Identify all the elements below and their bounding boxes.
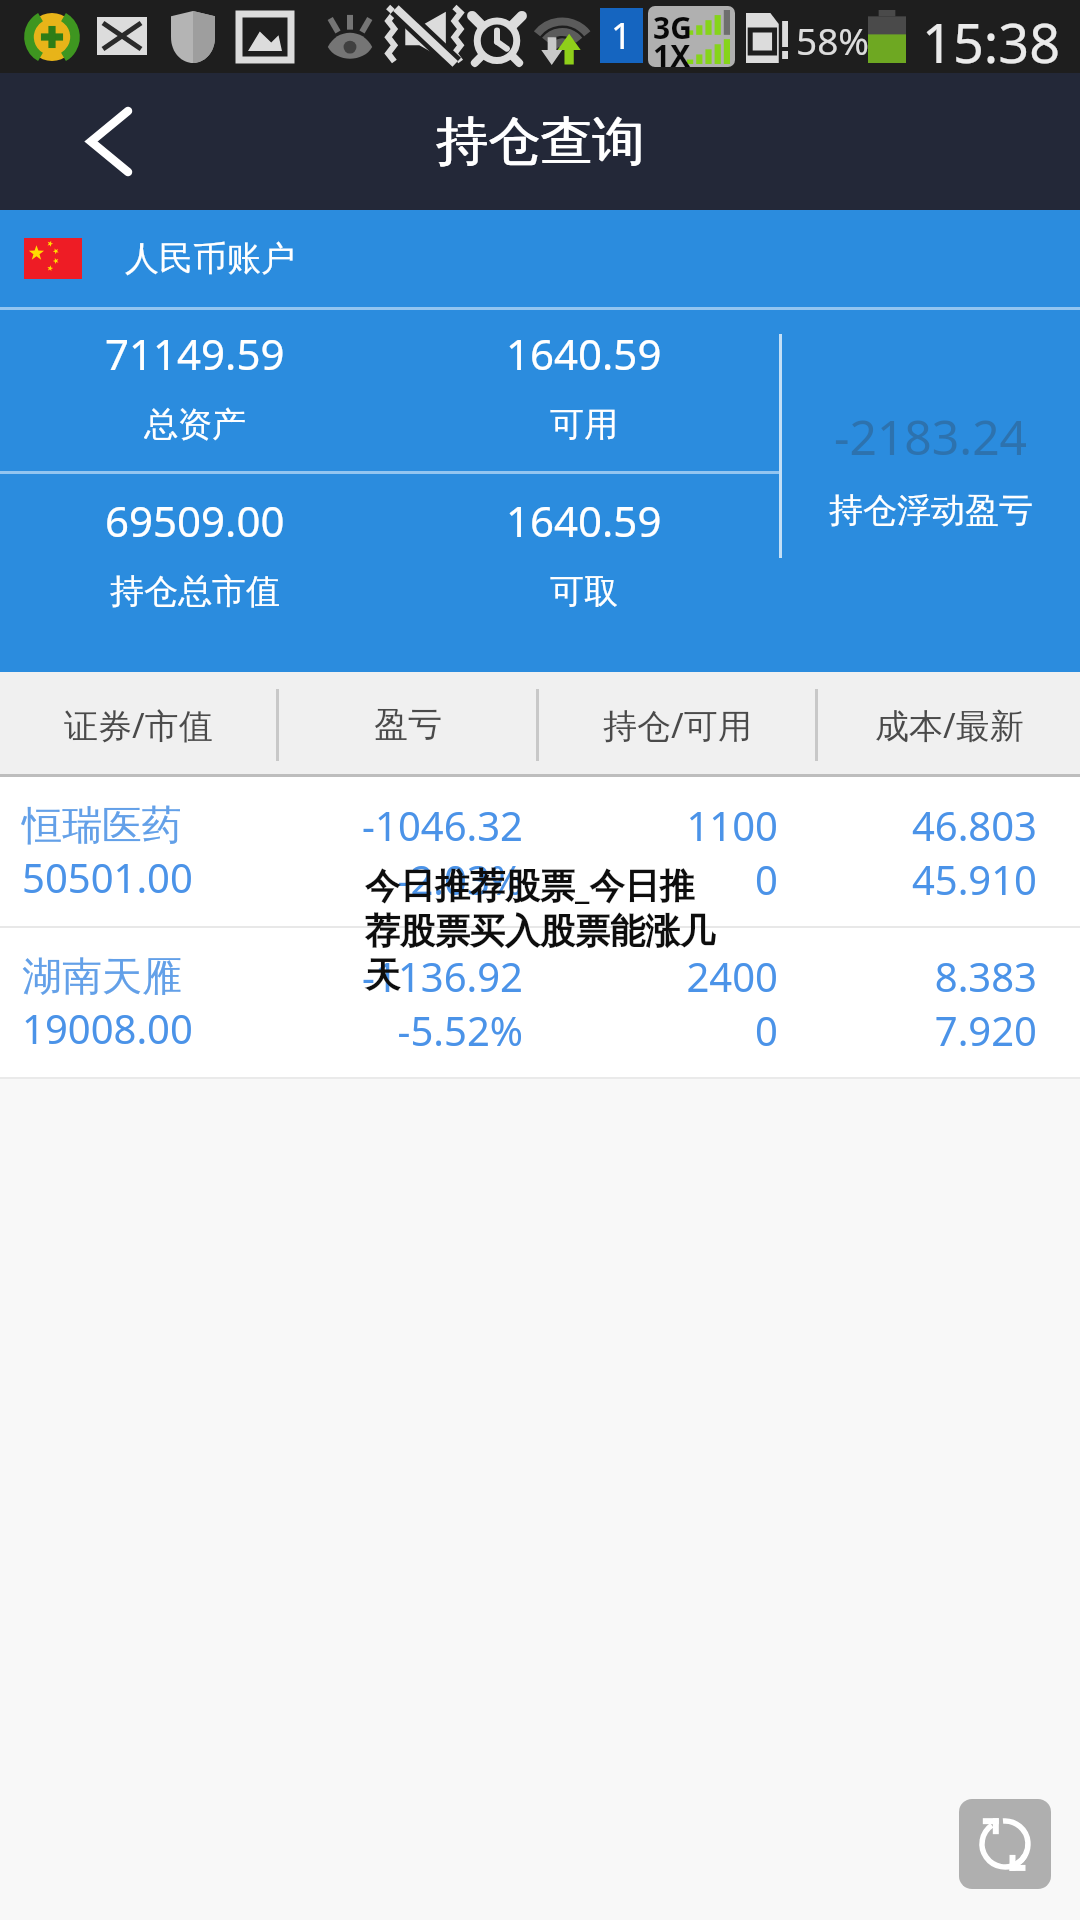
staticText: 50501.00 xyxy=(22,850,193,904)
button[interactable]: 恒瑞医药 xyxy=(0,777,1080,926)
staticText: 0 xyxy=(755,852,778,906)
staticText: 1X xyxy=(653,35,691,67)
staticText: 今日推荐股票_今日推 xyxy=(365,861,695,909)
staticText: 天 xyxy=(365,953,400,997)
button[interactable]: 成本/最新 xyxy=(818,672,1080,777)
staticText: 15:38 xyxy=(922,5,1061,78)
staticText: 荐股票买入股票能涨几 xyxy=(365,909,715,953)
staticText: -2183.24 xyxy=(834,404,1028,469)
button[interactable]: 持仓/可用 xyxy=(539,672,815,777)
staticText: 恒瑞医药 xyxy=(22,800,182,850)
button[interactable]: Refresh xyxy=(959,1799,1051,1889)
button[interactable]: 人民币账户 xyxy=(0,210,1080,307)
staticText: 总资产 xyxy=(144,403,246,446)
staticText: 46.803 xyxy=(911,798,1037,852)
staticText: 1640.59 xyxy=(506,325,662,382)
staticText: 58% xyxy=(796,15,870,65)
staticText: 证券/市值 xyxy=(64,702,213,748)
staticText: 1 xyxy=(611,11,632,60)
staticText: 0 xyxy=(755,1003,778,1057)
staticText: 69509.00 xyxy=(105,492,285,549)
staticText: 持仓/可用 xyxy=(603,702,752,748)
staticText: -1136.92 xyxy=(362,949,523,1003)
staticText: -2.03% xyxy=(397,852,523,906)
button[interactable]: 证券/市值 xyxy=(0,672,276,777)
staticText: 人民币账户 xyxy=(125,237,295,280)
staticText: 持仓浮动盈亏 xyxy=(829,489,1033,532)
staticText: 湖南天雁 xyxy=(22,951,182,1001)
staticText: 8.383 xyxy=(934,949,1037,1003)
staticText: -1046.32 xyxy=(362,798,523,852)
staticText: 可用 xyxy=(550,403,618,446)
staticText: 1100 xyxy=(686,798,778,852)
button[interactable]: 盈亏 xyxy=(279,672,536,777)
staticText: 2400 xyxy=(686,949,778,1003)
staticText: 1640.59 xyxy=(506,492,662,549)
staticText: 持仓查询 xyxy=(437,109,645,175)
staticText: 3G xyxy=(653,7,692,48)
staticText: -5.52% xyxy=(397,1003,523,1057)
staticText: 19008.00 xyxy=(22,1001,193,1055)
staticText: 可取 xyxy=(550,570,618,613)
staticText: 持仓总市值 xyxy=(110,570,280,613)
staticText: 45.910 xyxy=(911,852,1037,906)
staticText: 持仓查询 xyxy=(436,109,644,175)
staticText: 盈亏 xyxy=(374,703,442,746)
button[interactable]: Back xyxy=(0,73,218,210)
staticText: 7.920 xyxy=(934,1003,1037,1057)
button[interactable]: 湖南天雁 xyxy=(0,928,1080,1077)
staticText: 71149.59 xyxy=(105,325,285,382)
staticText: 成本/最新 xyxy=(875,702,1024,748)
